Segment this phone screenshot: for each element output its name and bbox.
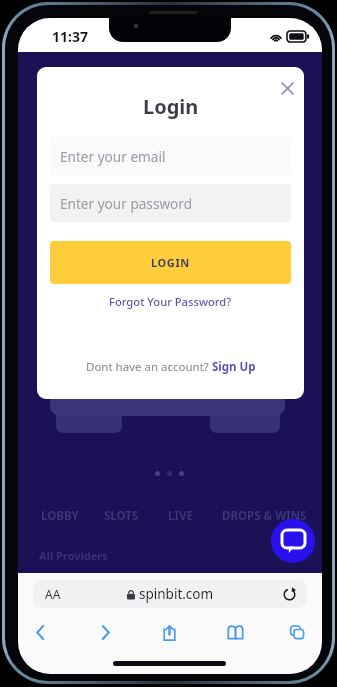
button[interactable]: Chat (271, 519, 315, 563)
staticText: LOGIN (151, 255, 190, 270)
button[interactable]: Enter your email (50, 137, 291, 175)
staticText: LOBBY (41, 508, 79, 524)
staticText: Enter your password (60, 194, 193, 213)
button[interactable]: Close (274, 75, 300, 101)
button[interactable]: Share (153, 616, 185, 648)
button[interactable]: Sign Up (212, 359, 256, 375)
staticText: Enter your email (60, 147, 166, 166)
staticText: Sign Up (212, 359, 256, 375)
staticText: Forgot Your Password? (109, 294, 232, 309)
staticText: LIVE (168, 508, 193, 524)
staticText: DROPS & WINS (222, 508, 307, 524)
staticText: All Providers (39, 548, 108, 563)
button[interactable]: LOGIN (50, 241, 291, 284)
staticText: SLOTS (104, 508, 139, 524)
staticText: AA (45, 586, 61, 602)
button[interactable]: DROPS & WINS (222, 508, 307, 524)
staticText: Login (143, 93, 199, 120)
button[interactable]: Back (24, 616, 56, 648)
button[interactable]: Forward (89, 616, 121, 648)
button[interactable]: Forgot Your Password? (37, 290, 304, 312)
staticText: 11:37 (52, 27, 88, 46)
button[interactable]: LIVE (168, 508, 193, 524)
button[interactable]: Bookmarks (219, 616, 251, 648)
button[interactable]: LOBBY (41, 508, 79, 524)
staticText: spinbit.com (139, 585, 214, 603)
button[interactable]: Tabs (281, 616, 313, 648)
button[interactable]: SLOTS (104, 508, 139, 524)
button[interactable]: Enter your password (50, 184, 291, 222)
button[interactable]: AA (33, 580, 307, 608)
button[interactable]: Reload (279, 584, 299, 604)
staticText: Dont have an account? (86, 359, 212, 375)
